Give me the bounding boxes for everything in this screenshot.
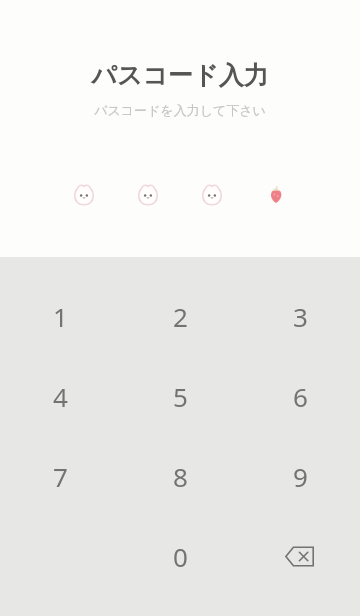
staticText: 9 (293, 459, 308, 494)
button[interactable]: 9 (240, 436, 360, 516)
button[interactable]: 6 (240, 356, 360, 436)
button[interactable]: 2 (120, 276, 240, 356)
staticText: 5 (173, 379, 188, 414)
staticText: 0 (173, 539, 188, 574)
button[interactable]: 7 (0, 436, 120, 516)
button[interactable]: 8 (120, 436, 240, 516)
button[interactable]: 5 (120, 356, 240, 436)
staticText: パスコード入力 (0, 60, 360, 91)
button[interactable]: 4 (0, 356, 120, 436)
button[interactable]: 1 (0, 276, 120, 356)
button[interactable]: Delete (240, 516, 360, 596)
staticText: 8 (173, 459, 188, 494)
staticText: 6 (293, 379, 308, 414)
staticText: 3 (293, 299, 308, 334)
staticText: 4 (53, 379, 68, 414)
staticText: パスコードを入力して下さい (0, 102, 360, 118)
staticText: 1 (53, 299, 68, 334)
staticText: 7 (53, 459, 68, 494)
button[interactable]: 0 (120, 516, 240, 596)
staticText: 2 (173, 299, 188, 334)
button[interactable]: 3 (240, 276, 360, 356)
